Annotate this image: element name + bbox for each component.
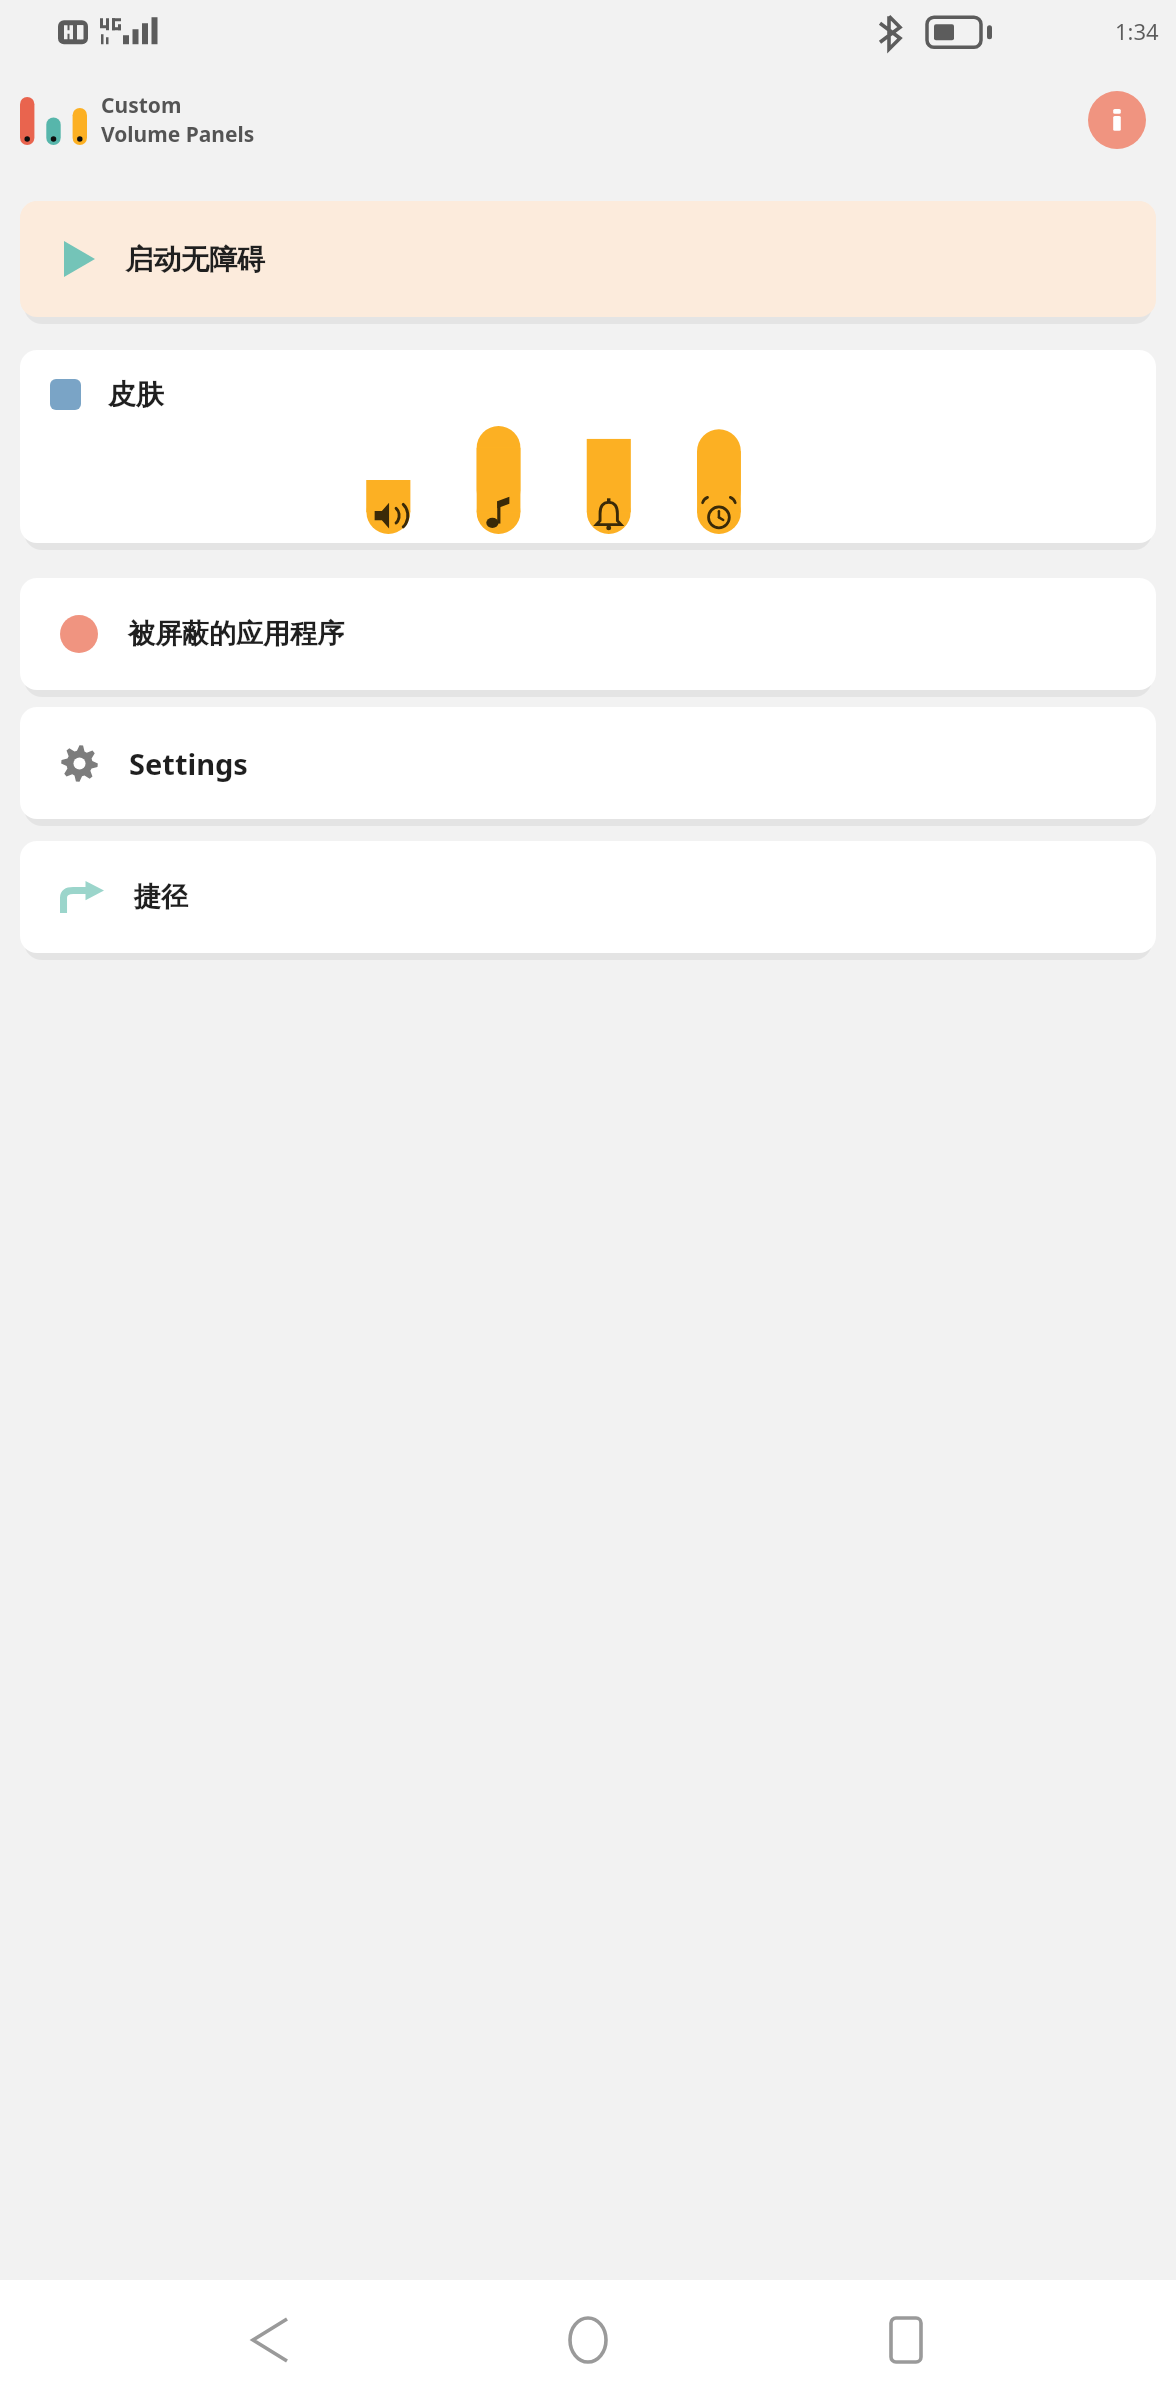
staticText: 捷径 — [134, 880, 188, 914]
staticText: Custom — [101, 91, 182, 120]
staticText: Settings — [129, 744, 248, 783]
staticText: Volume Panels — [101, 120, 255, 149]
button[interactable]: 启动无障碍 — [20, 201, 1156, 317]
button[interactable]: Info — [1088, 91, 1146, 149]
button[interactable]: Home — [540, 2292, 636, 2388]
button[interactable]: 皮肤 — [20, 350, 1156, 543]
button[interactable]: 被屏蔽的应用程序 — [20, 578, 1156, 690]
staticText: 被屏蔽的应用程序 — [128, 617, 344, 651]
button[interactable]: Recents — [858, 2292, 954, 2388]
button[interactable]: Settings — [20, 707, 1156, 819]
staticText: 1:34 — [1115, 16, 1159, 46]
button[interactable]: Back — [222, 2292, 318, 2388]
staticText: 皮肤 — [108, 377, 164, 412]
staticText: 启动无障碍 — [125, 242, 265, 277]
button[interactable]: 捷径 — [20, 841, 1156, 953]
